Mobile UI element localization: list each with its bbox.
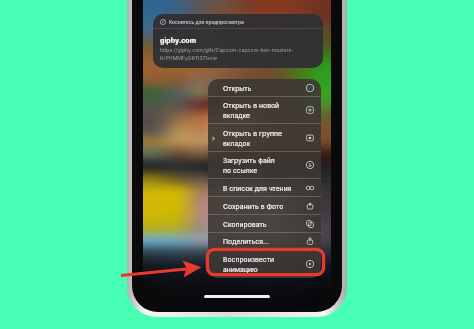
button[interactable]: Сохранить в Фото <box>208 197 321 214</box>
staticText: https://giphy.com/gifs/Capcom-capcom-ken… <box>160 47 316 62</box>
staticText: Сохранить в Фото <box>223 202 284 210</box>
staticText: Открыть <box>223 84 252 92</box>
button[interactable]: Воспроизвести анимацию <box>208 250 321 278</box>
button[interactable]: Открыть <box>208 79 321 96</box>
staticText: Воспроизвести анимацию <box>223 255 274 273</box>
button[interactable]: Скопировать <box>208 215 321 232</box>
staticText: giphy.com <box>160 36 197 44</box>
staticText: Коснитесь для предпросмотра <box>169 19 244 25</box>
staticText: В список для чтения <box>223 184 292 192</box>
button[interactable]: Коснитесь для предпросмотра <box>153 14 323 68</box>
staticText: Поделиться... <box>223 237 269 245</box>
button[interactable]: Highlighted menu option <box>205 247 326 277</box>
staticText: Загрузить файл по ссылке <box>223 156 275 174</box>
staticText: Открыть в группе вкладок <box>223 129 282 147</box>
staticText: Открыть в новой вкладке <box>223 101 280 119</box>
button[interactable]: В список для чтения <box>208 179 321 196</box>
button[interactable]: Поделиться... <box>208 233 321 249</box>
button[interactable]: Загрузить файл по ссылке <box>208 152 321 178</box>
staticText: Скопировать <box>223 220 267 228</box>
button[interactable]: Открыть в группе вкладок <box>208 124 321 151</box>
other: Arrow pointing at the menu option <box>0 0 474 329</box>
button[interactable]: Открыть в новой вкладке <box>208 97 321 123</box>
